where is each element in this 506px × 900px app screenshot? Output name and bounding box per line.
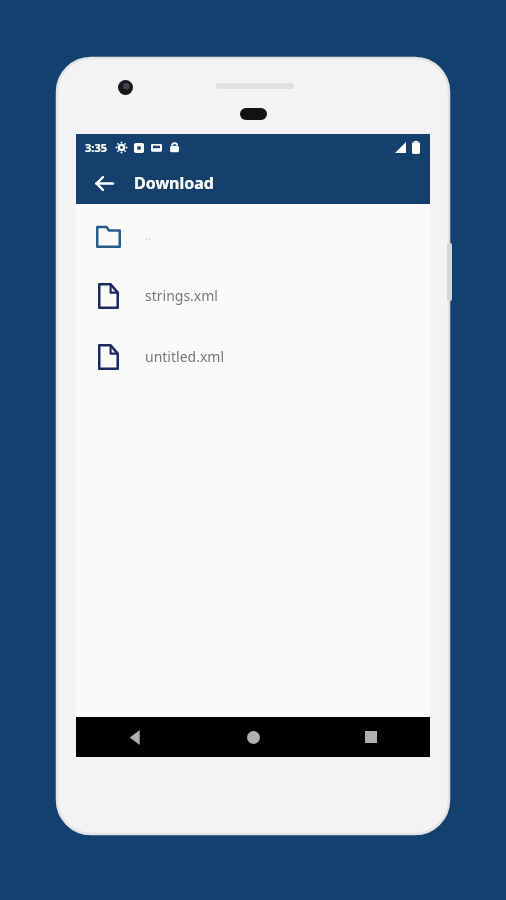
button[interactable]: Home (194, 717, 312, 757)
staticText: untitled.xml (145, 347, 225, 366)
button[interactable]: Back (88, 167, 120, 199)
button[interactable]: Recent apps (312, 717, 430, 757)
staticText: strings.xml (145, 286, 218, 305)
button[interactable]: .. (76, 204, 430, 265)
button[interactable]: untitled.xml (76, 326, 430, 387)
button[interactable]: Back (76, 717, 194, 757)
button[interactable]: strings.xml (76, 265, 430, 326)
staticText: Download (134, 172, 214, 194)
staticText: 3:35 (85, 140, 107, 155)
staticText: .. (145, 226, 152, 244)
